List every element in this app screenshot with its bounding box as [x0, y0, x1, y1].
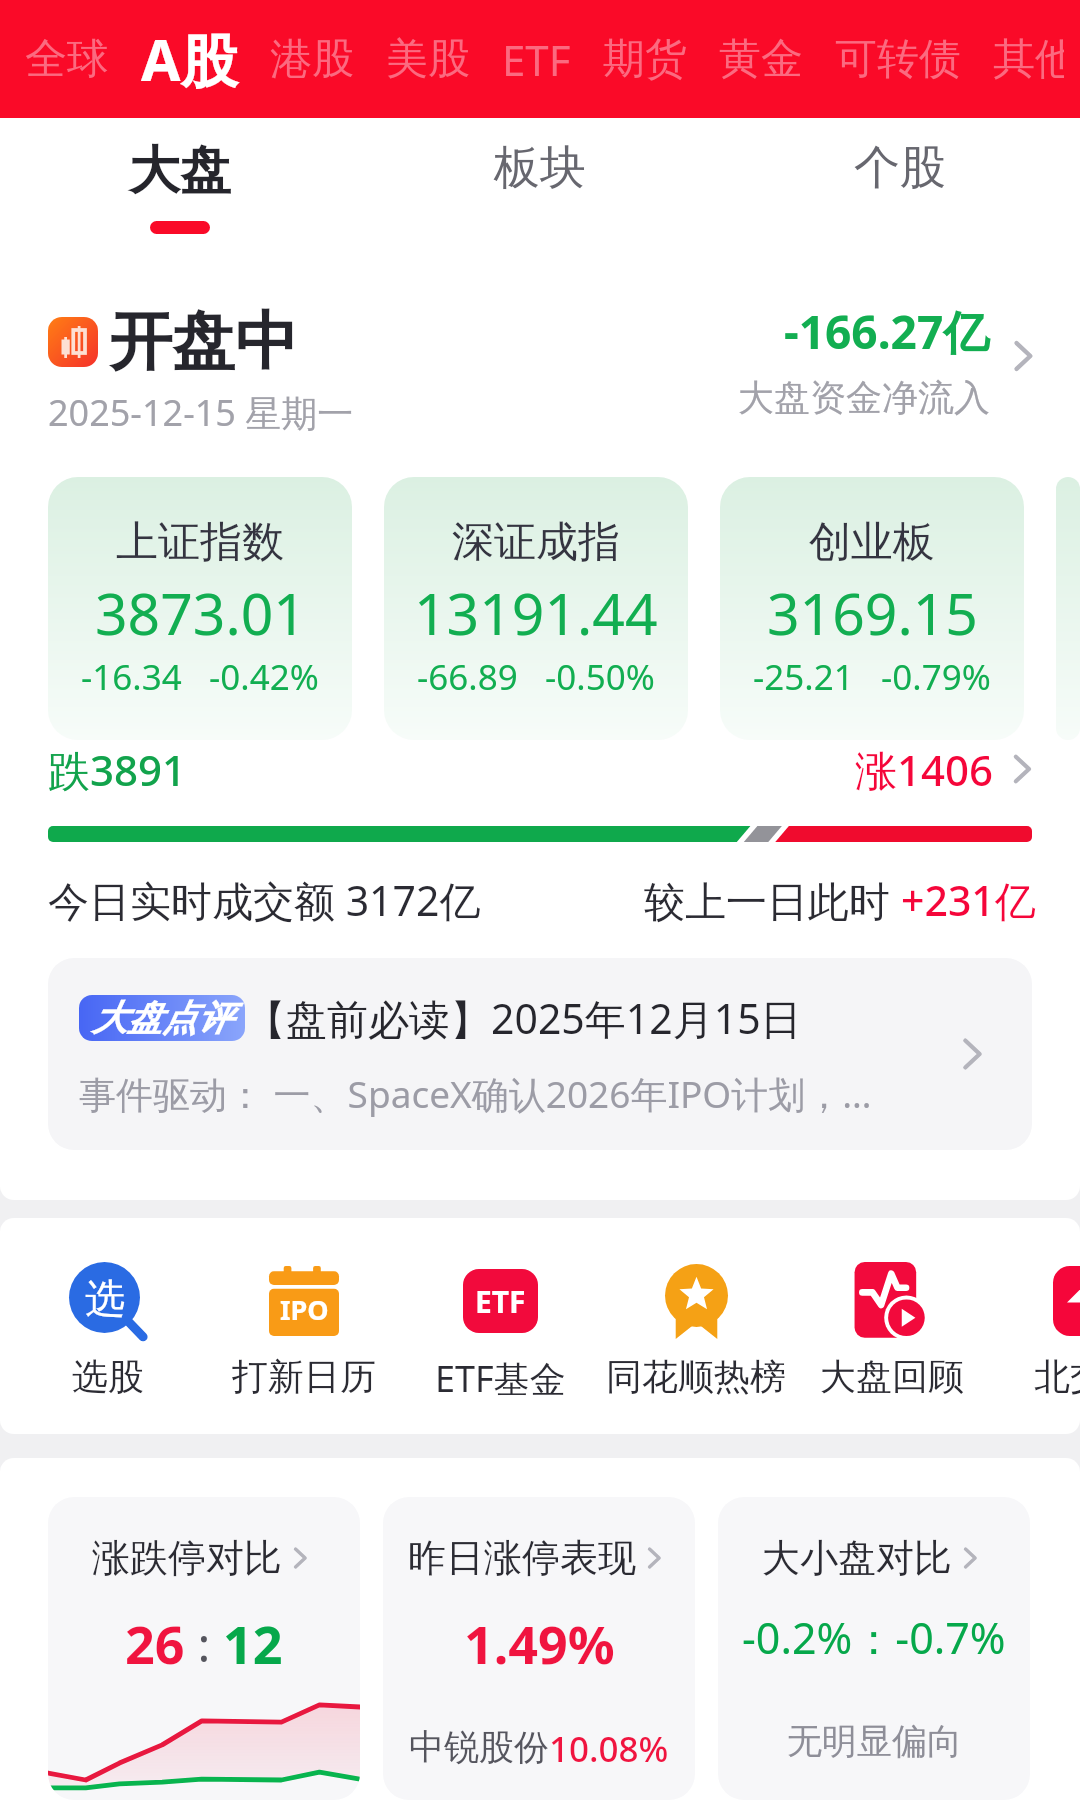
staticText: ETF基金	[435, 1354, 566, 1403]
staticText: :	[185, 1611, 223, 1676]
staticText: 昨日涨停表现	[408, 1534, 636, 1582]
button[interactable]: 板块	[360, 118, 720, 250]
button[interactable]: 选	[10, 1262, 206, 1399]
staticText: 选	[85, 1273, 125, 1323]
staticText: 涨1406	[855, 741, 994, 798]
button[interactable]: 大盘回顾	[794, 1262, 990, 1399]
staticText: -66.89 -0.50%	[417, 653, 655, 701]
staticText: 黄金	[719, 33, 803, 86]
staticText: 港股	[270, 33, 354, 86]
staticText: 上证指数	[116, 516, 284, 569]
button[interactable]: 港股	[254, 0, 370, 118]
staticText: -25.21 -0.79%	[753, 653, 991, 701]
button[interactable]: 可转债	[819, 0, 977, 118]
button[interactable]	[1056, 477, 1080, 740]
button[interactable]: 开盘中	[0, 250, 1080, 477]
staticText: 26	[125, 1608, 185, 1679]
staticText: 选股	[72, 1354, 144, 1399]
staticText: 中锐股份	[409, 1725, 549, 1769]
staticText: ETF	[475, 1281, 526, 1322]
button[interactable]: 黄金	[703, 0, 819, 118]
staticText: 大盘资金净流入	[738, 375, 990, 420]
staticText: 深证成指	[452, 516, 620, 569]
button[interactable]: ETF	[402, 1262, 598, 1403]
staticText: 美股	[386, 33, 470, 86]
staticText: 大小盘对比	[762, 1534, 952, 1582]
staticText: 大盘回顾	[820, 1354, 964, 1399]
button[interactable]: 昨日涨停表现	[383, 1497, 695, 1800]
staticText: 大盘点评	[92, 996, 232, 1040]
staticText: 3873.01	[95, 574, 306, 652]
button[interactable]: 大小盘对比	[718, 1497, 1030, 1800]
staticText: 较上一日此时	[644, 872, 901, 928]
staticText: 12	[223, 1608, 283, 1679]
staticText: 北交所	[1034, 1354, 1080, 1399]
staticText: 可转债	[835, 33, 961, 86]
staticText: 个股	[854, 139, 946, 197]
button[interactable]: 个股	[720, 118, 1080, 250]
staticText: 大盘	[129, 139, 231, 203]
staticText: -16.34 -0.42%	[81, 653, 319, 701]
staticText: 期货	[603, 33, 687, 86]
button[interactable]: 期货	[587, 0, 703, 118]
staticText: 打新日历	[232, 1354, 376, 1399]
staticText: 13191.44	[414, 574, 658, 652]
button[interactable]: ETF	[486, 0, 587, 118]
button[interactable]: 涨跌停对比	[48, 1497, 360, 1800]
button[interactable]: 大盘点评	[48, 958, 1032, 1150]
button[interactable]: 深证成指	[384, 477, 688, 740]
staticText: 开盘中	[109, 302, 298, 381]
staticText: -0.2%：-0.7%	[742, 1608, 1006, 1667]
staticText: 2025-12-15 星期一	[48, 388, 354, 437]
staticText: +231亿	[901, 872, 1036, 928]
button[interactable]: 其他	[977, 0, 1080, 118]
staticText: 事件驱动： 一、SpaceX确认2026年IPO计划，…	[79, 1068, 872, 1119]
button[interactable]: 同花顺热榜	[598, 1262, 794, 1399]
button[interactable]: IPO	[206, 1262, 402, 1399]
staticText: 3169.15	[767, 574, 978, 652]
button[interactable]: 美股	[370, 0, 486, 118]
button[interactable]: 北交所	[990, 1262, 1080, 1399]
staticText: 1.49%	[464, 1608, 615, 1679]
staticText: IPO	[280, 1291, 329, 1328]
staticText: 涨跌停对比	[92, 1534, 282, 1582]
button[interactable]: 上证指数	[48, 477, 352, 740]
staticText: 今日实时成交额 3172亿	[48, 872, 481, 928]
button[interactable]: 跌3891	[0, 740, 1080, 842]
staticText: 【盘前必读】2025年12月15日	[245, 990, 802, 1046]
staticText: 全球	[25, 33, 109, 86]
staticText: 板块	[494, 139, 586, 197]
other: 查看大盘资金净流入	[1000, 333, 1046, 379]
staticText: 无明显偏向	[787, 1719, 962, 1763]
button[interactable]: A股	[125, 0, 254, 118]
staticText: 跌3891	[48, 741, 187, 798]
staticText: 10.08%	[549, 1725, 669, 1773]
staticText: 同花顺热榜	[606, 1354, 786, 1399]
staticText: A股	[141, 20, 238, 98]
button[interactable]: 大盘	[0, 118, 360, 250]
staticText: 其他	[993, 33, 1064, 86]
button[interactable]: 创业板	[720, 477, 1024, 740]
staticText: ETF	[502, 31, 571, 88]
staticText: -166.27亿	[784, 300, 990, 363]
button[interactable]: 全球	[9, 0, 125, 118]
staticText: 创业板	[809, 516, 935, 569]
